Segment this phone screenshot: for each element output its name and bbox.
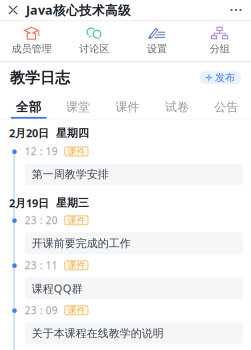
staticText: 公告 bbox=[214, 99, 238, 114]
button[interactable]: 分组 bbox=[188, 23, 251, 57]
staticText: 课件 bbox=[67, 146, 85, 157]
staticText: 教学日志 bbox=[10, 68, 70, 87]
button[interactable]: 关于本课程在线教学的说明 bbox=[25, 322, 243, 344]
button[interactable]: 发布 bbox=[200, 71, 241, 84]
button[interactable]: 课件 bbox=[103, 99, 152, 118]
button[interactable]: 设置 bbox=[125, 23, 188, 57]
staticText: 课堂 bbox=[66, 99, 90, 114]
staticText: 开课前要完成的工作 bbox=[32, 236, 131, 250]
button[interactable]: 公告 bbox=[202, 99, 251, 118]
staticText: 课件 bbox=[115, 99, 139, 114]
button[interactable]: 关闭 bbox=[0, 0, 26, 20]
staticText: 课件 bbox=[67, 260, 85, 271]
button[interactable]: 更多 bbox=[221, 0, 251, 20]
staticText: 23 : 20 bbox=[25, 214, 58, 227]
button[interactable]: 全部 bbox=[4, 99, 53, 119]
button[interactable]: 试卷 bbox=[152, 99, 202, 118]
staticText: 23 : 09 bbox=[25, 304, 58, 317]
staticText: 23 : 11 bbox=[25, 259, 58, 272]
staticText: 试卷 bbox=[165, 99, 189, 114]
staticText: 星期三 bbox=[56, 196, 89, 210]
staticText: 12 : 19 bbox=[25, 145, 58, 158]
button[interactable]: 讨论区 bbox=[63, 23, 126, 57]
button[interactable]: 第一周教学安排 bbox=[25, 163, 243, 185]
staticText: 发布 bbox=[215, 71, 235, 84]
staticText: 全部 bbox=[16, 99, 42, 115]
staticText: 第一周教学安排 bbox=[32, 168, 109, 181]
staticText: 课件 bbox=[67, 305, 85, 316]
staticText: 成员管理 bbox=[11, 42, 51, 55]
staticText: 2月20日 bbox=[9, 126, 49, 140]
staticText: 分组 bbox=[210, 42, 230, 55]
button[interactable]: 课程QQ群 bbox=[25, 277, 243, 299]
staticText: 设置 bbox=[147, 42, 167, 55]
staticText: 课件 bbox=[67, 215, 85, 226]
staticText: 2月19日 bbox=[9, 195, 49, 210]
staticText: 关于本课程在线教学的说明 bbox=[32, 326, 164, 340]
staticText: 星期四 bbox=[56, 126, 89, 140]
button[interactable]: 课堂 bbox=[53, 99, 103, 118]
staticText: 讨论区 bbox=[79, 42, 109, 55]
button[interactable]: 开课前要完成的工作 bbox=[25, 232, 243, 254]
staticText: Java核心技术高级 bbox=[26, 1, 131, 18]
button[interactable]: 成员管理 bbox=[0, 23, 63, 57]
staticText: 课程QQ群 bbox=[32, 281, 83, 296]
